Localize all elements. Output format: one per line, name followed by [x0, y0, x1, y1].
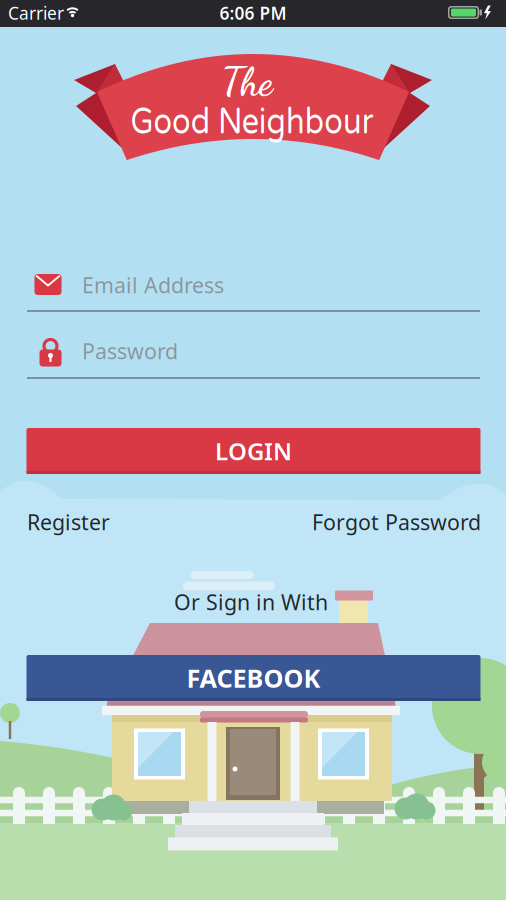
staticText: Email Address	[82, 271, 224, 299]
staticText: Or Sign in With	[174, 588, 328, 616]
button[interactable]: Password	[27, 327, 480, 379]
button[interactable]: Register	[27, 509, 187, 535]
staticText: FACEBOOK	[186, 661, 320, 695]
staticText: Forgot Password	[312, 508, 481, 536]
staticText: Password	[82, 337, 178, 365]
button[interactable]: FACEBOOK	[26, 655, 480, 701]
staticText: 6:06 PM	[219, 1, 286, 24]
staticText: LOGIN	[215, 435, 292, 467]
staticText: Carrier	[8, 1, 64, 24]
button[interactable]: Forgot Password	[261, 509, 481, 535]
staticText: The	[221, 59, 272, 105]
staticText: Good Neighbour	[109, 100, 395, 144]
button[interactable]: Email Address	[27, 260, 480, 312]
button[interactable]: LOGIN	[26, 428, 480, 474]
staticText: Register	[27, 508, 110, 536]
